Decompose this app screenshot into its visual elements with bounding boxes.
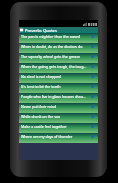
other: Favourite: [91, 125, 94, 128]
staticText: It's best to let the tooth: [21, 84, 61, 89]
staticText: Never put their mind: [21, 104, 57, 109]
other: Favourite: [91, 135, 94, 138]
other: Favourite: [91, 75, 94, 78]
button[interactable]: The squeaky wheel gets the grease: [19, 53, 98, 63]
staticText: No steel is not chopped: [21, 74, 61, 79]
staticText: The pen is mightier than the sword: [21, 34, 81, 39]
staticText: Where are my days of thunder: [21, 134, 73, 139]
button[interactable]: No steel is not chopped: [19, 73, 98, 83]
other: Favourite: [91, 95, 94, 98]
staticText: Proverbs Quotes: [25, 28, 57, 33]
staticText: When in doubt, do as the doctors do: [21, 44, 83, 49]
other: Favourite: [91, 45, 94, 48]
other: Favourite: [91, 65, 94, 68]
button[interactable]: Where are my days of thunder: [19, 133, 98, 143]
other: Favourite: [91, 115, 94, 118]
other: Favourite: [91, 55, 94, 58]
button[interactable]: People who live in glass houses should n…: [19, 93, 98, 103]
staticText: While drunk on the sun: [21, 114, 61, 119]
button[interactable]: It's best to let the tooth: [19, 83, 98, 93]
button[interactable]: The pen is mightier than the sword: [19, 33, 98, 43]
other: Favourite: [91, 35, 94, 38]
staticText: Make a castle feel together: [21, 124, 67, 129]
button[interactable]: When the going gets tough, the tough get…: [19, 63, 98, 73]
other: Favourite: [91, 85, 94, 88]
staticText: The squeaky wheel gets the grease: [21, 54, 81, 59]
button[interactable]: When in doubt, do as the doctors do: [19, 43, 98, 53]
other: Favourite: [91, 105, 94, 108]
staticText: People who live in glass houses should n…: [21, 94, 87, 99]
button[interactable]: Never put their mind: [19, 103, 98, 113]
staticText: When the going gets tough, the tough get…: [21, 64, 87, 69]
button[interactable]: While drunk on the sun: [19, 113, 98, 123]
button[interactable]: Make a castle feel together: [19, 123, 98, 133]
